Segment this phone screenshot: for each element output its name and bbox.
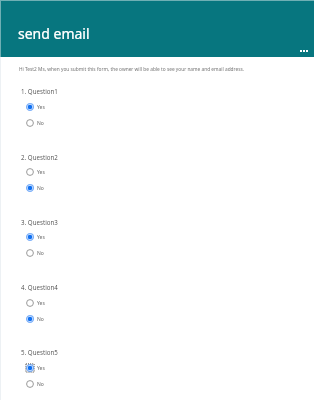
button[interactable]: Yes [23, 296, 45, 310]
staticText: No [37, 250, 44, 257]
staticText: 2. Question2 [21, 153, 58, 161]
staticText: 1. Question1 [21, 87, 58, 95]
staticText: Yes [37, 234, 45, 241]
staticText: No [37, 185, 44, 192]
button[interactable]: Yes [23, 100, 45, 114]
button[interactable]: More options [297, 48, 311, 54]
button[interactable]: No [23, 181, 44, 195]
button[interactable]: Yes [23, 361, 45, 375]
button[interactable]: Yes [23, 230, 45, 244]
staticText: Yes [37, 300, 45, 307]
button[interactable]: No [23, 312, 44, 326]
button[interactable]: No [23, 246, 44, 260]
staticText: Yes [37, 365, 45, 372]
staticText: Yes [37, 104, 45, 111]
staticText: No [37, 381, 44, 388]
button[interactable]: No [23, 116, 44, 130]
staticText: Hi Test2 Ms, when you submit this form, … [19, 66, 245, 73]
staticText: No [37, 120, 44, 127]
staticText: No [37, 316, 44, 323]
staticText: 3. Question3 [21, 218, 58, 226]
button[interactable]: No [23, 377, 44, 391]
staticText: send email [18, 24, 90, 43]
button[interactable]: Yes [23, 165, 45, 179]
staticText: Yes [37, 169, 45, 176]
staticText: 5. Question5 [21, 348, 58, 356]
staticText: 4. Question4 [21, 283, 58, 291]
